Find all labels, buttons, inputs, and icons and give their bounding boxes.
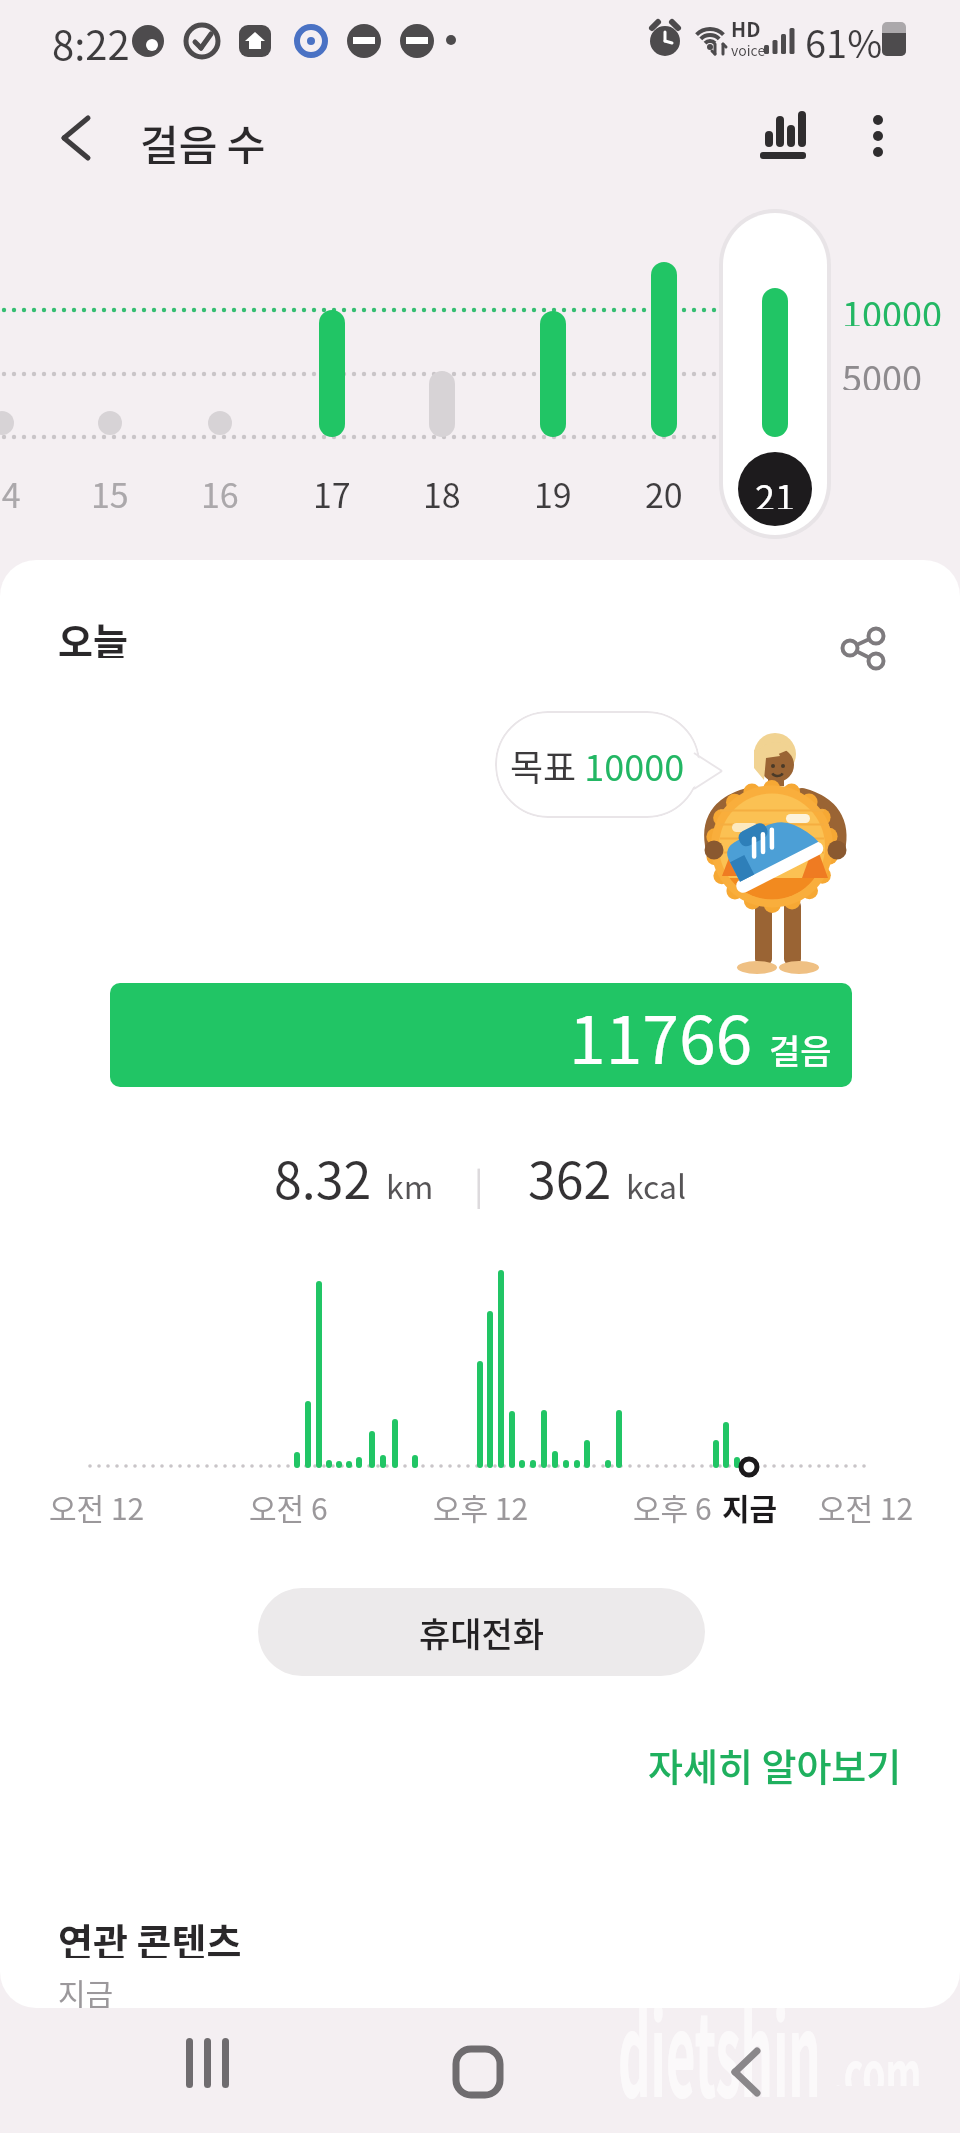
button[interactable]: 11766 bbox=[110, 983, 852, 1087]
staticText: 걸음 bbox=[769, 1025, 832, 1074]
staticText: 자세히 알아보기 bbox=[648, 1737, 902, 1792]
button[interactable] bbox=[432, 2022, 528, 2112]
staticText: 362 bbox=[528, 1141, 612, 1207]
staticText: 목표 10000 bbox=[510, 739, 685, 791]
staticText: 오전 12 bbox=[818, 1485, 914, 1525]
button[interactable] bbox=[730, 210, 820, 540]
staticText: 17 bbox=[313, 469, 351, 509]
staticText: 걸음 수 bbox=[140, 112, 266, 164]
button[interactable]: 휴대전화 bbox=[258, 1588, 705, 1676]
button[interactable] bbox=[397, 210, 487, 540]
staticText: 14 bbox=[0, 469, 21, 509]
staticText: .com bbox=[832, 2026, 921, 2086]
staticText: voice bbox=[731, 40, 766, 58]
staticText: 15 bbox=[91, 469, 129, 509]
staticText: 61% bbox=[805, 14, 883, 62]
staticText: 8.32 bbox=[274, 1141, 372, 1207]
staticText: 지금 bbox=[722, 1485, 778, 1525]
staticText: 오늘 bbox=[58, 612, 128, 658]
staticText: | bbox=[474, 1157, 484, 1209]
staticText: 오후 6 bbox=[633, 1485, 712, 1525]
button[interactable] bbox=[160, 2022, 256, 2112]
staticText: 오전 6 bbox=[249, 1485, 328, 1525]
button[interactable] bbox=[175, 210, 265, 540]
staticText: 오후 12 bbox=[433, 1485, 529, 1525]
button[interactable] bbox=[508, 210, 598, 540]
staticText: 16 bbox=[201, 469, 239, 509]
button[interactable] bbox=[702, 2022, 798, 2112]
staticText: 8:22 bbox=[52, 14, 130, 62]
staticText: 20 bbox=[645, 469, 683, 509]
button[interactable] bbox=[287, 210, 377, 540]
staticText: 21 bbox=[755, 469, 795, 509]
staticText: 19 bbox=[534, 469, 572, 509]
staticText: km bbox=[386, 1162, 434, 1208]
button[interactable] bbox=[44, 104, 108, 168]
staticText: HD bbox=[731, 14, 761, 40]
button[interactable] bbox=[619, 210, 709, 540]
button[interactable] bbox=[830, 612, 894, 676]
button[interactable] bbox=[65, 210, 155, 540]
staticText: kcal bbox=[626, 1162, 687, 1208]
button[interactable]: 자세히 알아보기 bbox=[500, 1732, 902, 1796]
staticText: 5000 bbox=[842, 350, 922, 390]
staticText: 지금 bbox=[58, 1970, 114, 2008]
button[interactable] bbox=[748, 102, 816, 170]
staticText: 18 bbox=[423, 469, 461, 509]
button[interactable] bbox=[850, 102, 906, 170]
staticText: 오전 12 bbox=[49, 1485, 145, 1525]
staticText: 11766 bbox=[569, 987, 753, 1083]
staticText: 휴대전화 bbox=[419, 1608, 545, 1657]
staticText: dietshin bbox=[618, 1964, 821, 2104]
staticText: 연관 콘텐츠 bbox=[58, 1912, 242, 1958]
staticText: 10000 bbox=[842, 286, 942, 326]
